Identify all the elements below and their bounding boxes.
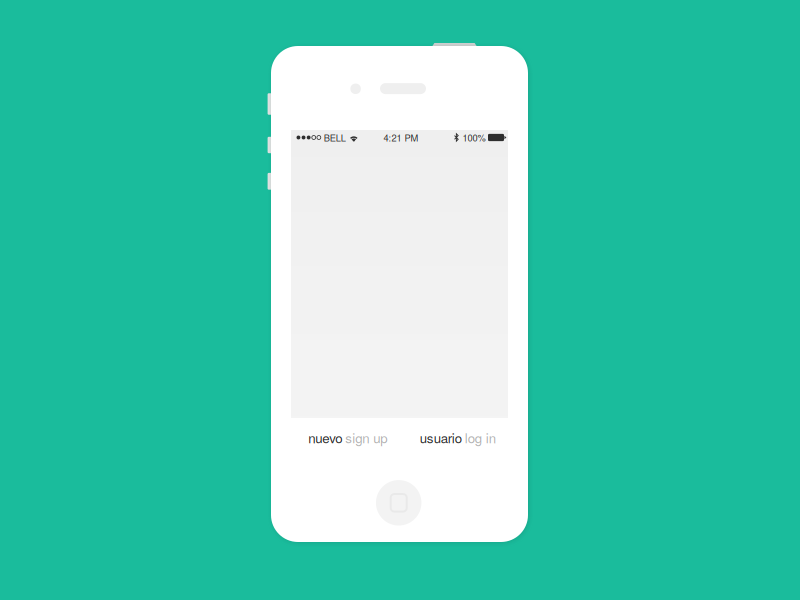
staticText: usuario	[420, 428, 462, 447]
button[interactable]: nuevo	[291, 418, 399, 457]
staticText: 100%	[462, 131, 485, 144]
staticText: BELL	[324, 131, 346, 144]
staticText: nuevo	[308, 428, 342, 447]
staticText: 4:21 PM	[383, 131, 418, 144]
staticText: sign up	[345, 428, 387, 447]
staticText: log in	[465, 428, 496, 447]
button[interactable]: usuario	[399, 418, 508, 457]
button[interactable]: Home	[376, 480, 421, 526]
